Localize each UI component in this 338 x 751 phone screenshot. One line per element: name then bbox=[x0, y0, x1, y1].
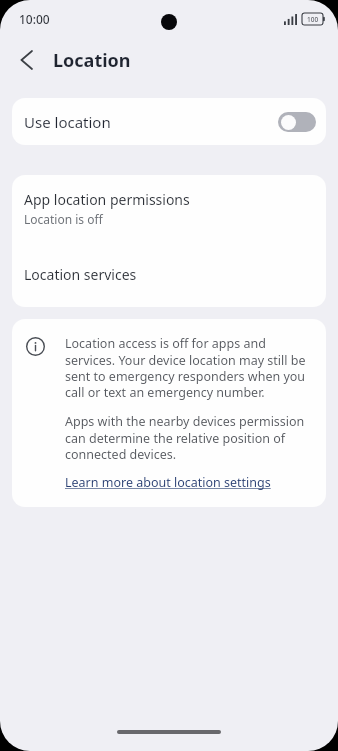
button[interactable]: Use location bbox=[12, 98, 326, 145]
staticText: 100 bbox=[307, 15, 319, 24]
staticText: App location permissions bbox=[24, 190, 190, 209]
staticText: Location access is off for apps and serv… bbox=[65, 335, 312, 400]
staticText: Location bbox=[53, 48, 131, 73]
staticText: Location services bbox=[24, 265, 137, 284]
button[interactable]: Back bbox=[8, 42, 44, 78]
button[interactable]: Learn more about location settings bbox=[65, 474, 271, 491]
button[interactable]: Location services bbox=[12, 241, 326, 307]
button[interactable]: App location permissions bbox=[12, 175, 326, 241]
staticText: Use location bbox=[24, 112, 278, 132]
button[interactable]: Use location toggle bbox=[278, 112, 316, 132]
staticText: Learn more about location settings bbox=[65, 474, 271, 491]
staticText: 10:00 bbox=[19, 11, 50, 27]
staticText: Location is off bbox=[24, 211, 103, 227]
staticText: Apps with the nearby devices permission … bbox=[65, 413, 312, 462]
